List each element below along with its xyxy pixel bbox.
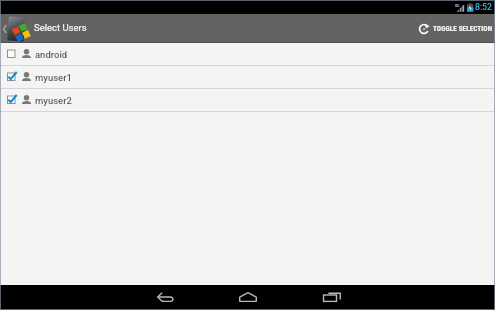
button[interactable]: android — [0, 43, 495, 65]
staticText: TOGGLE SELECTION — [433, 25, 493, 33]
button[interactable]: Home — [230, 285, 266, 309]
button[interactable]: TOGGLE SELECTION — [411, 14, 495, 43]
button[interactable]: Recents — [314, 285, 350, 309]
staticText: myuser1 — [35, 72, 72, 83]
button[interactable]: myuser1 — [0, 66, 495, 88]
button[interactable]: myuser2 — [0, 89, 495, 111]
staticText: Select Users — [34, 22, 87, 33]
button[interactable]: Select Users — [0, 14, 95, 43]
staticText: myuser2 — [35, 95, 72, 106]
staticText: 8:52 — [475, 2, 492, 12]
staticText: android — [35, 49, 68, 60]
button[interactable]: Back — [147, 285, 183, 309]
